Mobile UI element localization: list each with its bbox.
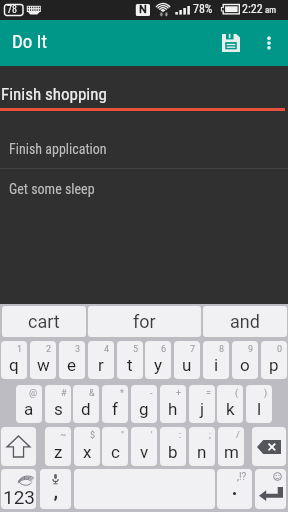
staticText: z <box>54 442 63 462</box>
staticText: am <box>265 5 277 16</box>
staticText: 7 <box>190 344 196 355</box>
staticText: q <box>9 355 19 375</box>
staticText: 123 <box>3 486 36 508</box>
button[interactable]: & <box>73 385 99 423</box>
staticText: b <box>168 442 178 462</box>
button[interactable]: More options <box>251 23 286 63</box>
staticText: 2 <box>46 344 52 355</box>
button[interactable]: and <box>203 306 287 337</box>
button[interactable]: ' <box>131 427 157 466</box>
staticText: h <box>168 399 178 419</box>
staticText: 78 <box>7 4 17 16</box>
staticText: y <box>154 355 163 375</box>
staticText: a <box>24 399 34 419</box>
staticText: e <box>67 355 77 375</box>
staticText: and <box>230 311 260 332</box>
staticText: u <box>182 355 192 375</box>
staticText: for <box>133 311 156 332</box>
staticText: s <box>54 399 63 419</box>
staticText: 1 <box>17 344 23 355</box>
button[interactable]: " <box>102 427 128 466</box>
staticText: d <box>81 399 91 419</box>
button[interactable]: + <box>160 385 186 423</box>
button[interactable]: 9 <box>232 341 258 379</box>
button[interactable]: 0 <box>261 341 287 379</box>
button[interactable]: 4 <box>88 341 114 379</box>
button[interactable]: * <box>102 385 128 423</box>
staticText: r <box>98 355 104 375</box>
button[interactable]: Save <box>209 23 253 63</box>
staticText: = <box>206 388 211 399</box>
staticText: ~ <box>60 430 67 441</box>
button[interactable]: # <box>45 385 71 423</box>
staticText: f <box>112 399 118 419</box>
staticText: Get some sleep <box>9 181 95 197</box>
staticText: 5 <box>133 344 139 355</box>
staticText: l <box>257 399 262 419</box>
staticText: p <box>269 355 279 375</box>
button[interactable]: 7 <box>174 341 200 379</box>
staticText: & <box>89 388 95 399</box>
staticText: $ <box>90 430 96 441</box>
button[interactable]: @ <box>16 385 42 423</box>
staticText: Do It <box>12 30 48 52</box>
staticText: g <box>139 399 149 419</box>
staticText: cart <box>28 311 60 332</box>
staticText: 0 <box>277 344 283 355</box>
button[interactable]: for <box>88 306 201 337</box>
staticText: Finish shopping <box>1 84 107 104</box>
staticText: x <box>83 442 92 462</box>
button[interactable]: - <box>131 385 157 423</box>
staticText: 9 <box>248 344 254 355</box>
button[interactable]: ; <box>189 427 215 466</box>
button[interactable]: ~ <box>45 427 71 466</box>
staticText: n <box>197 442 207 462</box>
staticText: + <box>176 388 182 399</box>
staticText: j <box>200 399 205 419</box>
button[interactable]: 8 <box>203 341 229 379</box>
staticText: , <box>54 481 58 502</box>
staticText: / <box>236 430 240 441</box>
button[interactable]: 2 <box>30 341 56 379</box>
staticText: 8 <box>219 344 225 355</box>
staticText: 4 <box>104 344 110 355</box>
button[interactable]: Symbols <box>1 469 36 509</box>
button[interactable]: 3 <box>59 341 85 379</box>
staticText: 6 <box>161 344 167 355</box>
staticText: ,!? <box>237 471 247 483</box>
staticText: 78% <box>193 2 213 16</box>
button[interactable]: 1 <box>1 341 27 379</box>
button[interactable]: $ <box>74 427 100 466</box>
staticText: * <box>120 388 124 399</box>
button[interactable]: Backspace <box>252 427 286 466</box>
button[interactable]: : <box>160 427 186 466</box>
staticText: : <box>179 430 182 441</box>
button[interactable]: Period <box>217 469 252 509</box>
button[interactable]: = <box>189 385 215 423</box>
staticText: ) <box>264 388 268 399</box>
button[interactable]: Shift <box>1 427 36 466</box>
staticText: o <box>240 355 250 375</box>
button[interactable]: ( <box>217 385 243 423</box>
staticText: # <box>61 388 67 399</box>
staticText: v <box>140 442 149 462</box>
button[interactable]: Enter <box>255 469 286 509</box>
staticText: ; <box>209 430 211 441</box>
staticText: w <box>37 355 50 375</box>
staticText: m <box>224 442 239 462</box>
button[interactable]: Finish application <box>0 129 288 168</box>
button[interactable]: 5 <box>117 341 143 379</box>
staticText: i <box>214 355 219 375</box>
staticText: 2:22 <box>242 2 263 16</box>
staticText: @ <box>29 388 38 399</box>
button[interactable]: ) <box>246 385 272 423</box>
button[interactable]: 6 <box>145 341 171 379</box>
button[interactable]: cart <box>2 306 86 337</box>
button[interactable]: Get some sleep <box>0 169 288 208</box>
staticText: ' <box>151 430 153 441</box>
button[interactable]: / <box>218 427 244 466</box>
staticText: t <box>127 355 133 375</box>
staticText: k <box>226 399 235 419</box>
button[interactable]: Comma <box>40 469 71 509</box>
